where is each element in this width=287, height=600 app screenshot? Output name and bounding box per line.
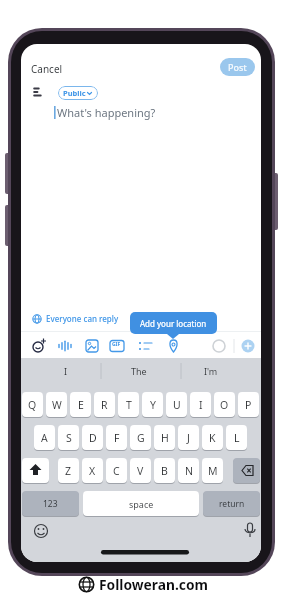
button[interactable]	[22, 458, 49, 483]
button[interactable]: Public	[58, 86, 98, 100]
staticText: F	[114, 431, 120, 445]
button[interactable]: O	[214, 392, 235, 417]
button[interactable]: X	[82, 458, 103, 483]
button[interactable]: I	[190, 392, 211, 417]
button[interactable]: R	[94, 392, 115, 417]
button[interactable]: F	[106, 425, 127, 450]
button[interactable]: E	[70, 392, 91, 417]
staticText: GIF	[112, 341, 121, 348]
staticText: K	[209, 431, 216, 445]
staticText: H	[161, 431, 169, 445]
staticText: W	[52, 398, 62, 412]
staticText: Everyone can reply	[46, 313, 119, 324]
staticText: N	[185, 464, 193, 478]
staticText: M	[208, 464, 218, 478]
staticText: What's happening?	[57, 105, 156, 120]
staticText: P	[245, 398, 252, 412]
staticText: L	[234, 431, 240, 445]
button[interactable]: C	[106, 458, 127, 483]
button[interactable]: Add your location	[130, 312, 217, 334]
button[interactable]: Z	[58, 458, 79, 483]
staticText: J	[187, 431, 190, 445]
staticText: Post	[228, 61, 247, 73]
staticText: return	[219, 498, 245, 510]
button[interactable]	[21, 334, 261, 358]
button[interactable]: Post	[220, 58, 255, 76]
button[interactable]: T	[118, 392, 139, 417]
button[interactable]: A	[34, 425, 55, 450]
button[interactable]: return	[203, 491, 260, 516]
button[interactable]: Q	[22, 392, 43, 417]
staticText: T	[126, 398, 132, 412]
staticText: 123	[43, 498, 58, 510]
staticText: I	[64, 365, 68, 377]
staticText: Y	[150, 398, 156, 412]
staticText: Cancel	[31, 62, 63, 76]
button[interactable]: Everyone can reply	[32, 313, 119, 324]
staticText: V	[137, 464, 144, 478]
button[interactable]: Cancel	[31, 62, 63, 76]
button[interactable]: K	[202, 425, 223, 450]
staticText: I'm	[204, 365, 218, 377]
button[interactable]: Y	[142, 392, 163, 417]
button[interactable]: G	[130, 425, 151, 450]
button[interactable]: M	[202, 458, 223, 483]
staticText: The	[131, 365, 147, 377]
staticText: A	[41, 431, 48, 445]
staticText: Followeran.com	[99, 575, 209, 594]
button[interactable]: B	[154, 458, 175, 483]
staticText: Q	[28, 398, 37, 412]
button[interactable]: S	[58, 425, 79, 450]
staticText: S	[66, 431, 72, 445]
staticText: I	[199, 398, 203, 412]
button[interactable]: V	[130, 458, 151, 483]
staticText: G	[137, 431, 145, 445]
staticText: C	[113, 464, 120, 478]
button[interactable]: W	[46, 392, 67, 417]
staticText: U	[173, 398, 181, 412]
staticText: O	[220, 398, 229, 412]
staticText: B	[161, 464, 168, 478]
staticText: space	[129, 498, 154, 510]
button[interactable]: N	[178, 458, 199, 483]
button[interactable]: J	[178, 425, 199, 450]
staticText: Z	[65, 464, 72, 478]
staticText: Public	[63, 88, 86, 98]
button[interactable]: 123	[22, 491, 79, 516]
button[interactable]	[233, 458, 260, 483]
button[interactable]: L	[226, 425, 247, 450]
staticText: D	[89, 431, 97, 445]
button[interactable]: U	[166, 392, 187, 417]
button[interactable]: space	[83, 491, 199, 516]
staticText: X	[89, 464, 96, 478]
button[interactable]: P	[238, 392, 259, 417]
button[interactable]: Followeran.com	[78, 575, 209, 594]
staticText: E	[78, 398, 84, 412]
button[interactable]: D	[82, 425, 103, 450]
staticText: Add your location	[140, 318, 207, 329]
button[interactable]: H	[154, 425, 175, 450]
staticText: R	[101, 398, 108, 412]
